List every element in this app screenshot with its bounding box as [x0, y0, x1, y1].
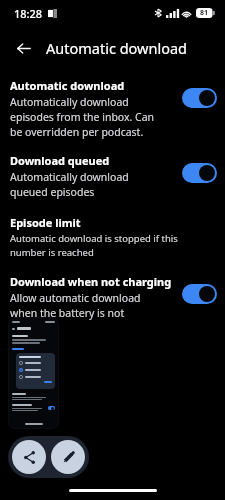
staticText: 81: [200, 8, 209, 18]
button[interactable]: Back: [10, 35, 36, 61]
button[interactable]: Toggle: [182, 284, 217, 304]
staticText: Download queued: [10, 153, 110, 168]
button[interactable]: [8, 317, 59, 429]
button[interactable]: Share: [12, 440, 46, 474]
staticText: Automatic download: [10, 78, 125, 93]
button[interactable]: Download when not charging: [0, 272, 225, 322]
button[interactable]: Edit: [51, 440, 85, 474]
staticText: Episode limit: [10, 215, 81, 230]
button[interactable]: Toggle: [182, 88, 217, 108]
staticText: 18:28: [14, 6, 43, 21]
staticText: Download when not charging: [10, 274, 172, 289]
button[interactable]: Episode limit: [0, 213, 225, 260]
button[interactable]: Download queued: [0, 151, 225, 201]
staticText: Allow automatic download when the batter…: [10, 291, 141, 320]
staticText: Automatically download episodes from the…: [10, 95, 155, 139]
button[interactable]: Toggle: [182, 163, 217, 183]
button[interactable]: Automatic download: [0, 76, 225, 141]
staticText: Automatic download is stopped if this nu…: [10, 232, 178, 258]
staticText: Automatically download queued episodes: [10, 170, 129, 199]
staticText: Automatic download: [46, 38, 187, 58]
